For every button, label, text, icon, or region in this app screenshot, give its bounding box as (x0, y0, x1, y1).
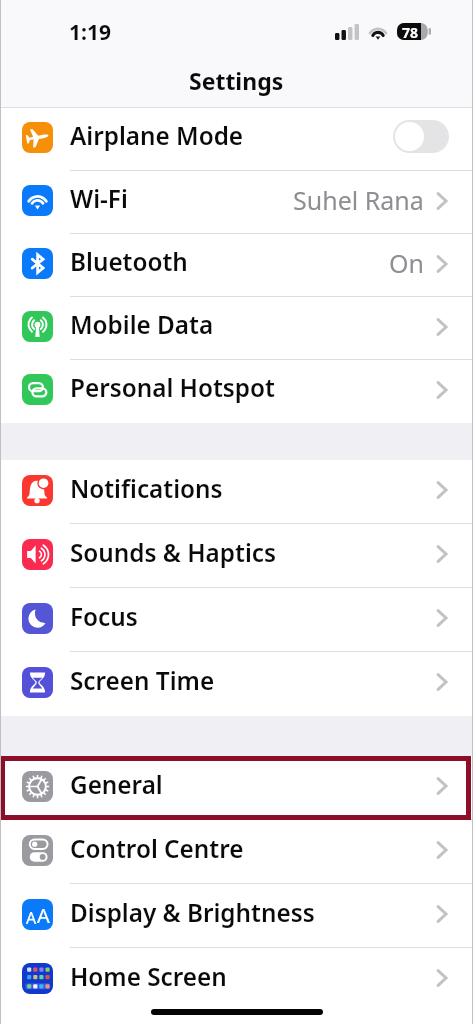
button[interactable]: Toggle Airplane Mode (393, 120, 449, 153)
staticText: Mobile Data (70, 308, 214, 341)
button[interactable]: Screen Time (0, 652, 473, 716)
staticText: Wi-Fi (70, 182, 128, 215)
staticText: Settings (189, 65, 284, 96)
button[interactable]: General (0, 756, 473, 820)
staticText: Sounds & Haptics (70, 536, 276, 569)
staticText: Airplane Mode (70, 119, 244, 152)
button[interactable]: Personal Hotspot (0, 360, 473, 423)
button[interactable]: A (0, 884, 473, 948)
staticText: Notifications (70, 472, 223, 505)
button[interactable]: Sounds & Haptics (0, 524, 473, 588)
staticText: A (26, 907, 37, 929)
staticText: On (389, 246, 424, 280)
staticText: Display & Brightness (70, 896, 315, 929)
button[interactable]: Focus (0, 588, 473, 652)
button[interactable]: Wi-Fi (0, 171, 473, 234)
button[interactable]: Bluetooth (0, 234, 473, 297)
button[interactable]: Mobile Data (0, 297, 473, 360)
button[interactable]: Home Screen (0, 948, 473, 1012)
staticText: Control Centre (70, 832, 244, 865)
staticText: Bluetooth (70, 245, 188, 278)
staticText: Suhel Rana (293, 183, 424, 217)
button[interactable]: Notifications (0, 460, 473, 524)
staticText: 78 (402, 23, 419, 40)
staticText: Personal Hotspot (70, 371, 275, 404)
staticText: Focus (70, 600, 138, 633)
staticText: Home Screen (70, 960, 227, 993)
staticText: A (37, 902, 50, 929)
button[interactable]: Control Centre (0, 820, 473, 884)
staticText: 1:19 (69, 18, 111, 47)
button[interactable]: Airplane Mode (0, 108, 473, 171)
staticText: General (70, 768, 163, 801)
staticText: Screen Time (70, 664, 215, 697)
